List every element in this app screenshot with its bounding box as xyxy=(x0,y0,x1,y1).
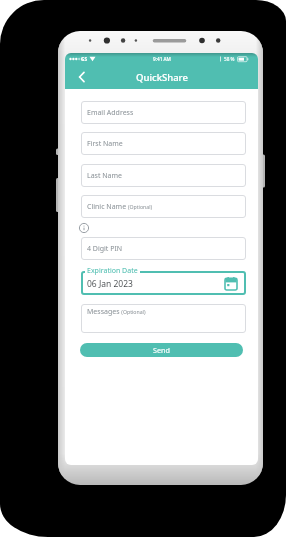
staticText: First Name xyxy=(87,139,123,149)
staticText: QuickShare xyxy=(136,71,188,84)
staticText: Expiration Date xyxy=(87,266,138,276)
button[interactable]: Email Address xyxy=(81,101,246,124)
staticText: Messages (Optional) xyxy=(87,307,146,317)
staticText: Send xyxy=(153,345,170,355)
button[interactable]: Clinic Name (Optional) xyxy=(81,195,246,218)
button[interactable]: 06 Jan 2023 xyxy=(81,271,246,295)
staticText: 9:41 AM xyxy=(153,56,171,62)
button[interactable]: Send xyxy=(80,343,243,357)
staticText: 06 Jan 2023 xyxy=(87,278,133,290)
staticText: 58 % xyxy=(224,56,235,62)
staticText: Clinic Name (Optional) xyxy=(87,202,153,212)
staticText: 4 Digit PIN xyxy=(87,244,123,254)
button[interactable]: First Name xyxy=(81,132,246,155)
button[interactable]: 4 Digit PIN xyxy=(81,237,246,260)
button[interactable]: Messages (Optional) xyxy=(81,304,246,333)
button[interactable]: Last Name xyxy=(81,164,246,187)
button[interactable] xyxy=(73,67,91,85)
staticText: Last Name xyxy=(87,171,123,181)
staticText: GS xyxy=(81,56,87,62)
staticText: Email Address xyxy=(87,108,134,118)
